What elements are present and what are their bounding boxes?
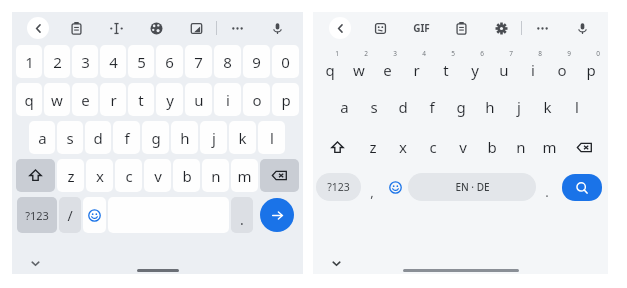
button[interactable]: g xyxy=(142,121,169,154)
button[interactable]: r xyxy=(100,83,126,116)
button[interactable]: Hide keyboard xyxy=(327,254,345,272)
button[interactable]: r xyxy=(402,48,431,86)
button[interactable]: . xyxy=(536,168,558,206)
button[interactable]: b xyxy=(477,128,506,166)
button[interactable]: d xyxy=(388,88,417,126)
button[interactable]: v xyxy=(448,128,477,166)
button[interactable]: i xyxy=(214,83,241,116)
button[interactable]: k xyxy=(533,88,562,126)
button[interactable]: Back xyxy=(18,12,57,44)
button[interactable]: q xyxy=(16,83,42,116)
button[interactable]: s xyxy=(57,121,83,154)
button[interactable]: a xyxy=(330,88,359,126)
button[interactable]: t xyxy=(128,83,154,116)
button[interactable]: m xyxy=(231,159,258,192)
button[interactable]: w xyxy=(344,48,373,86)
button[interactable]: / xyxy=(59,197,81,233)
button[interactable]: Shift xyxy=(316,128,358,166)
button[interactable]: t xyxy=(431,48,460,86)
button[interactable]: ?123 xyxy=(17,197,57,233)
staticText: h xyxy=(180,128,190,148)
button[interactable]: . xyxy=(231,197,253,233)
button[interactable]: Emoji xyxy=(383,168,408,206)
button[interactable]: y xyxy=(460,48,489,86)
button[interactable]: f xyxy=(417,88,446,126)
button[interactable]: Backspace xyxy=(564,128,605,166)
button[interactable]: k xyxy=(229,121,256,154)
button[interactable]: Enter xyxy=(260,198,294,232)
button[interactable]: 5 xyxy=(128,45,154,78)
button[interactable]: j xyxy=(504,88,533,126)
button[interactable]: c xyxy=(418,128,448,166)
staticText: w xyxy=(353,60,365,80)
button[interactable]: g xyxy=(446,88,475,126)
button[interactable]: x xyxy=(86,159,113,192)
button[interactable]: 8 xyxy=(214,45,241,78)
button[interactable]: c xyxy=(115,159,142,192)
button[interactable]: j xyxy=(200,121,227,154)
button[interactable]: e xyxy=(72,83,98,116)
button[interactable]: 9 xyxy=(243,45,270,78)
button[interactable] xyxy=(16,159,55,192)
staticText: m xyxy=(237,166,252,186)
button[interactable]: Back xyxy=(319,12,360,44)
button[interactable]: 7 xyxy=(185,45,212,78)
button[interactable]: e xyxy=(373,48,402,86)
staticText: q xyxy=(325,60,335,80)
button[interactable]: 3 xyxy=(72,45,98,78)
button[interactable]: l xyxy=(562,88,591,126)
button[interactable]: w xyxy=(44,83,70,116)
button[interactable]: ?123 xyxy=(316,173,361,201)
button[interactable]: i xyxy=(518,48,547,86)
button[interactable]: s xyxy=(359,88,388,126)
button[interactable]: More options xyxy=(522,12,562,44)
button[interactable]: Voice input xyxy=(562,12,602,44)
button[interactable]: z xyxy=(57,159,84,192)
button[interactable]: n xyxy=(202,159,229,192)
button[interactable]: y xyxy=(156,83,183,116)
button[interactable]: Text editing xyxy=(96,12,136,44)
button[interactable]: u xyxy=(185,83,212,116)
button[interactable]: h xyxy=(171,121,198,154)
button[interactable]: a xyxy=(29,121,55,154)
button[interactable]: v xyxy=(144,159,171,192)
button[interactable]: EN · DE xyxy=(408,173,536,201)
button[interactable]: Themes xyxy=(136,12,176,44)
button[interactable]: Clipboard xyxy=(57,12,96,44)
button[interactable]: p xyxy=(576,48,605,86)
button[interactable]: Clipboard xyxy=(441,12,481,44)
button[interactable]: n xyxy=(506,128,535,166)
button[interactable]: 0 xyxy=(272,45,299,78)
button[interactable]: Settings xyxy=(481,12,521,44)
button[interactable]: f xyxy=(113,121,140,154)
staticText: d xyxy=(398,97,408,117)
button[interactable]: Emoji xyxy=(83,197,106,233)
button[interactable]: 4 xyxy=(100,45,126,78)
button[interactable]: o xyxy=(547,48,576,86)
button[interactable]: h xyxy=(475,88,504,126)
button[interactable]: p xyxy=(272,83,299,116)
button[interactable]: o xyxy=(243,83,270,116)
button[interactable]: GIF xyxy=(401,12,441,44)
button[interactable]: x xyxy=(388,128,418,166)
button[interactable]: u xyxy=(489,48,518,86)
staticText: g xyxy=(456,97,466,117)
button[interactable]: d xyxy=(85,121,111,154)
button[interactable]: Voice input xyxy=(257,12,297,44)
button[interactable]: m xyxy=(535,128,564,166)
button[interactable]: b xyxy=(173,159,200,192)
button[interactable]: l xyxy=(258,121,285,154)
button[interactable]: , xyxy=(361,168,383,206)
button[interactable]: Hide keyboard xyxy=(26,254,44,272)
button[interactable]: Search xyxy=(562,174,602,201)
button[interactable]: 2 xyxy=(44,45,70,78)
button[interactable]: z xyxy=(358,128,388,166)
button[interactable]: 1 xyxy=(16,45,42,78)
button[interactable]: Stickers xyxy=(360,12,401,44)
button[interactable]: q xyxy=(316,48,344,86)
button[interactable]: Translate xyxy=(176,12,216,44)
button[interactable] xyxy=(260,159,299,192)
button[interactable]: More options xyxy=(217,12,257,44)
button[interactable]: 6 xyxy=(156,45,183,78)
